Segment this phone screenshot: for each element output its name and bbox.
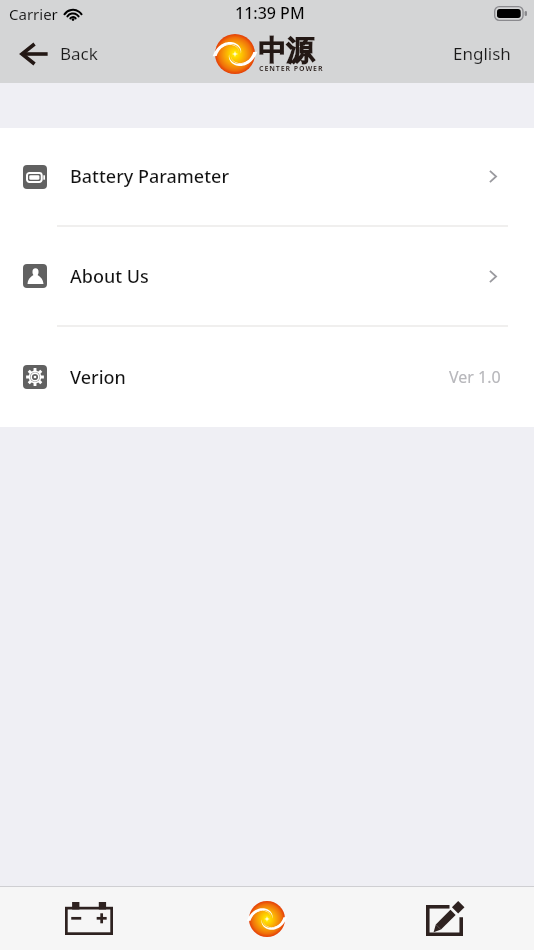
button[interactable]: Verion	[0, 327, 534, 427]
staticText: 11:39 PM	[235, 2, 305, 24]
staticText: Carrier	[9, 4, 58, 24]
staticText: About Us	[70, 264, 149, 289]
button[interactable]: Edit	[356, 887, 534, 950]
staticText: Ver 1.0	[449, 366, 501, 388]
button[interactable]: Battery	[0, 887, 178, 950]
staticText: Battery Parameter	[70, 164, 230, 189]
staticText: 中源	[258, 33, 314, 68]
button[interactable]: About Us	[0, 227, 534, 325]
staticText: Back	[60, 42, 98, 65]
staticText: English	[453, 42, 511, 65]
button[interactable]: Back	[0, 34, 112, 73]
staticText: CENTER POWER	[259, 64, 324, 74]
staticText: Verion	[70, 365, 126, 390]
button[interactable]: Home	[178, 887, 356, 950]
button[interactable]: English	[437, 34, 534, 73]
button[interactable]: Battery Parameter	[0, 128, 534, 225]
